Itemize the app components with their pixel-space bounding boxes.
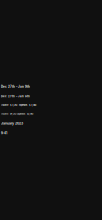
staticText: Income: $4,250 Expenses: $3,980 bbox=[1, 104, 37, 107]
staticText: 9:41 bbox=[1, 131, 7, 135]
staticText: Dec 27th – Jan 9th bbox=[1, 85, 30, 88]
staticText: January 2023 bbox=[1, 121, 23, 125]
staticText: Income: $4,250 Expenses: $3,980 bbox=[1, 113, 33, 115]
staticText: Dec 27th – Jan 9th bbox=[1, 94, 30, 98]
